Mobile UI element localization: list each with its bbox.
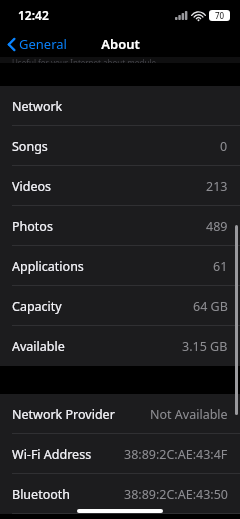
staticText: Useful for your Internet about module <box>12 57 156 63</box>
button[interactable]: Applications <box>0 246 240 286</box>
staticText: General <box>19 35 67 53</box>
staticText: Photos <box>12 218 53 235</box>
staticText: Not Available <box>150 406 228 423</box>
staticText: Capacity <box>12 298 62 315</box>
staticText: About <box>101 35 140 53</box>
staticText: 38:89:2C:AE:43:4F <box>124 446 228 463</box>
button[interactable]: Songs <box>0 126 240 166</box>
staticText: 61 <box>213 258 228 275</box>
button[interactable]: General <box>0 32 73 56</box>
staticText: Wi-Fi Address <box>12 446 92 463</box>
button[interactable]: Photos <box>0 206 240 246</box>
staticText: 213 <box>206 178 228 195</box>
staticText: 489 <box>206 218 228 235</box>
staticText: Available <box>12 338 65 355</box>
staticText: 64 GB <box>193 298 228 315</box>
button[interactable]: Available <box>0 326 240 366</box>
button[interactable]: Network <box>0 86 240 126</box>
staticText: Network <box>12 98 63 115</box>
staticText: 70 <box>215 10 225 21</box>
staticText: Songs <box>12 138 48 155</box>
staticText: Network Provider <box>12 406 115 423</box>
button[interactable]: Network Provider <box>0 394 240 434</box>
staticText: 12:42 <box>18 7 49 23</box>
button[interactable]: Bluetooth <box>0 474 240 514</box>
staticText: 38:89:2C:AE:43:50 <box>124 486 228 503</box>
staticText: 3.15 GB <box>182 338 228 355</box>
staticText: Bluetooth <box>12 486 71 503</box>
staticText: 0 <box>220 138 228 155</box>
button[interactable]: Capacity <box>0 286 240 326</box>
button[interactable]: Videos <box>0 166 240 206</box>
staticText: Videos <box>12 178 52 195</box>
staticText: Applications <box>12 258 84 275</box>
button[interactable]: Wi-Fi Address <box>0 434 240 474</box>
